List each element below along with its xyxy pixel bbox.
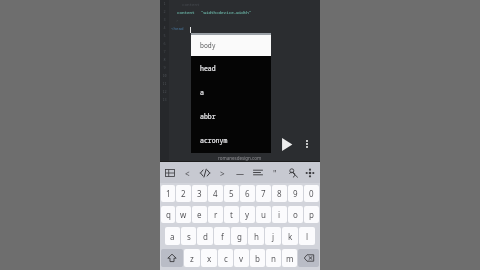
staticText: body [200,41,216,50]
button[interactable]: q [161,206,175,223]
staticText: x [207,253,212,264]
button[interactable]: abbr [191,104,271,128]
button[interactable]: 9 [288,185,303,202]
staticText: acronym [200,136,228,145]
button[interactable]: 0 [304,185,319,202]
staticText: q [166,209,171,220]
button[interactable]: r [208,206,223,223]
staticText: 7 [261,188,266,199]
staticText: p [309,209,314,220]
button[interactable]: d [197,227,213,245]
button[interactable]: More options [299,136,315,152]
button[interactable]: w [176,206,191,223]
staticText: j [272,231,275,242]
staticText: u [261,209,266,220]
button[interactable]: x [201,249,217,267]
button[interactable]: Indent [250,165,266,181]
button[interactable]: j [265,227,281,245]
button[interactable]: Arrow keys [302,165,318,181]
staticText: 12 [162,89,167,94]
button[interactable]: 2 [176,185,191,202]
staticText: z [190,253,194,264]
button[interactable]: c [218,249,233,267]
button[interactable]: Shift [161,249,183,267]
staticText: content [177,10,195,16]
button[interactable]: 1 [161,185,175,202]
staticText: n [271,253,276,264]
button[interactable]: a [165,227,180,245]
staticText: 3 [197,188,202,199]
button[interactable]: head [191,56,271,80]
staticText: 5 [229,188,234,199]
staticText: abbr [200,112,216,121]
button[interactable]: 3 [192,185,207,202]
button[interactable]: 7 [256,185,271,202]
staticText: e [197,209,202,220]
button[interactable]: < [179,165,195,181]
button[interactable]: 8 [272,185,287,202]
button[interactable]: n [266,249,281,267]
staticText: " [273,168,277,179]
button[interactable]: 6 [240,185,255,202]
staticText: 2 [181,188,186,199]
button[interactable]: u [256,206,271,223]
staticText: 8 [277,188,282,199]
staticText: 4 [213,188,218,199]
button[interactable]: g [231,227,247,245]
button[interactable]: Backspace [298,249,319,267]
button[interactable]: b [250,249,265,267]
staticText: head [200,64,216,73]
button[interactable]: e [192,206,207,223]
button[interactable]: k [282,227,298,245]
staticText: 3 [163,17,166,22]
button[interactable]: i [272,206,287,223]
staticText: 1 [166,188,171,199]
button[interactable]: " [267,165,283,181]
staticText: romanesdesign.com [218,155,262,161]
button[interactable]: y [240,206,255,223]
button[interactable]: z [184,249,200,267]
button[interactable]: l [299,227,315,245]
staticText: 7 [163,49,166,54]
button[interactable]: Ampersand [285,165,301,181]
staticText: f [221,231,224,242]
staticText: <head [171,26,184,32]
button[interactable]: v [234,249,249,267]
staticText: 9 [163,65,166,70]
button[interactable]: — [232,165,248,181]
staticText: b [255,253,260,264]
staticText: 5 [163,33,166,38]
button[interactable]: acronym [191,128,271,152]
staticText: r [214,209,218,220]
button[interactable]: 5 [224,185,239,202]
button[interactable]: p [304,206,319,223]
staticText: 10 [162,73,167,78]
staticText: k [288,231,293,242]
button[interactable]: t [224,206,239,223]
button[interactable]: body [191,35,271,56]
staticText: > [220,168,225,179]
button[interactable]: Keyboard layout [162,165,178,181]
button[interactable]: 4 [208,185,223,202]
staticText: 13 [162,97,167,102]
button[interactable]: f [214,227,230,245]
button[interactable]: Tag [197,165,213,181]
button[interactable]: Play [276,134,296,154]
button[interactable]: s [181,227,196,245]
staticText: 6 [245,188,250,199]
staticText: 0 [309,188,314,199]
staticText: h [254,231,259,242]
staticText: a [170,231,175,242]
button[interactable]: a [191,80,271,104]
staticText: 4 [163,25,166,30]
button[interactable]: o [288,206,303,223]
button[interactable]: > [214,165,230,181]
button[interactable]: m [282,249,297,267]
staticText: < [185,168,190,179]
button[interactable]: h [248,227,264,245]
staticText: d [203,231,208,242]
staticText: — [236,168,244,179]
